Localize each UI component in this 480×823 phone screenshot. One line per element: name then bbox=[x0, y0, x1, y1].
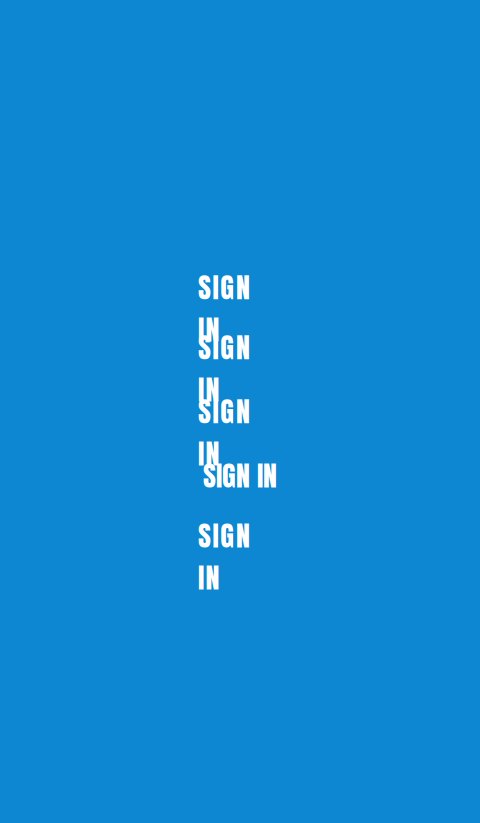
staticText: SIGN IN bbox=[198, 266, 282, 308]
staticText: SIGN IN bbox=[198, 514, 282, 557]
staticText: SIGN IN bbox=[198, 326, 282, 368]
staticText: SIGN IN bbox=[198, 390, 282, 433]
staticText: SIGN IN bbox=[203, 454, 277, 497]
